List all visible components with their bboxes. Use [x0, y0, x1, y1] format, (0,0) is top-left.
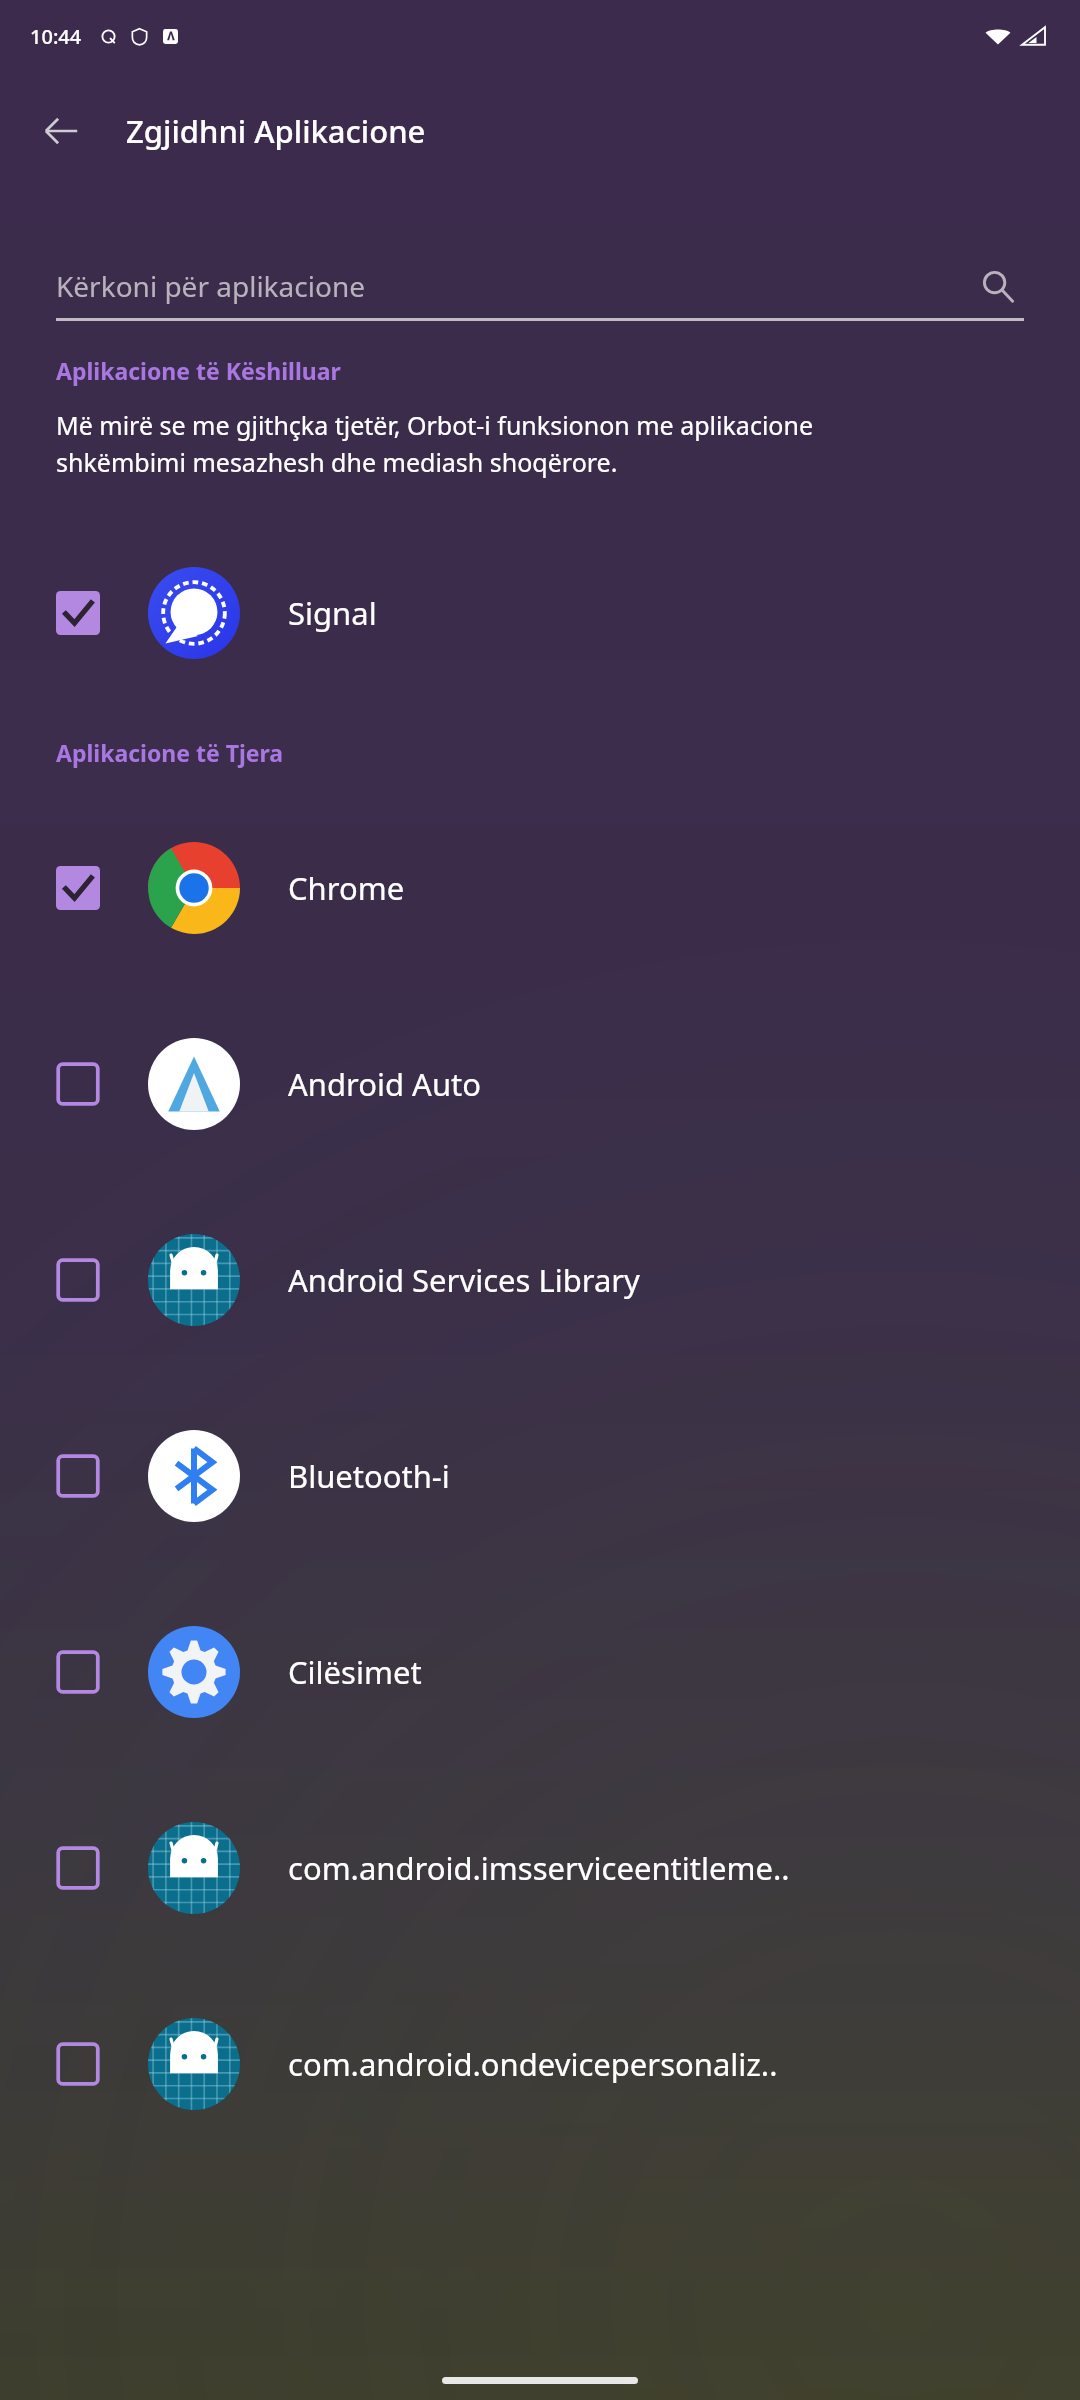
staticText: Aplikacione të Këshilluar [56, 355, 341, 386]
button[interactable]: Back [22, 92, 100, 170]
staticText: Kërkoni për aplikacione [56, 267, 972, 305]
button[interactable]: Android Auto [0, 986, 1080, 1182]
staticText: Signal [288, 592, 377, 634]
button[interactable]: Signal [0, 515, 1080, 711]
staticText: Android Services Library [288, 1259, 640, 1301]
staticText: 10:44 [30, 23, 82, 50]
staticText: Aplikacione të Tjera [56, 737, 284, 768]
staticText: Chrome [288, 867, 405, 909]
staticText: Bluetooth-i [288, 1455, 450, 1497]
staticText: Android Auto [288, 1063, 482, 1105]
button[interactable]: Cilësimet [0, 1574, 1080, 1770]
staticText: Më mirë se me gjithçka tjetër, Orbot-i f… [56, 408, 940, 479]
button[interactable]: Search [972, 260, 1024, 312]
staticText: com.android.imsserviceentitleme.. [288, 1847, 790, 1889]
button[interactable]: com.android.ondevicepersonaliz.. [0, 1966, 1080, 2162]
button[interactable]: com.android.imsserviceentitleme.. [0, 1770, 1080, 1966]
staticText: Cilësimet [288, 1651, 422, 1693]
button[interactable]: Bluetooth-i [0, 1378, 1080, 1574]
button[interactable]: Chrome [0, 790, 1080, 986]
staticText: com.android.ondevicepersonaliz.. [288, 2043, 778, 2085]
button[interactable]: Android Services Library [0, 1182, 1080, 1378]
staticText: Zgjidhni Aplikacione [126, 110, 426, 152]
